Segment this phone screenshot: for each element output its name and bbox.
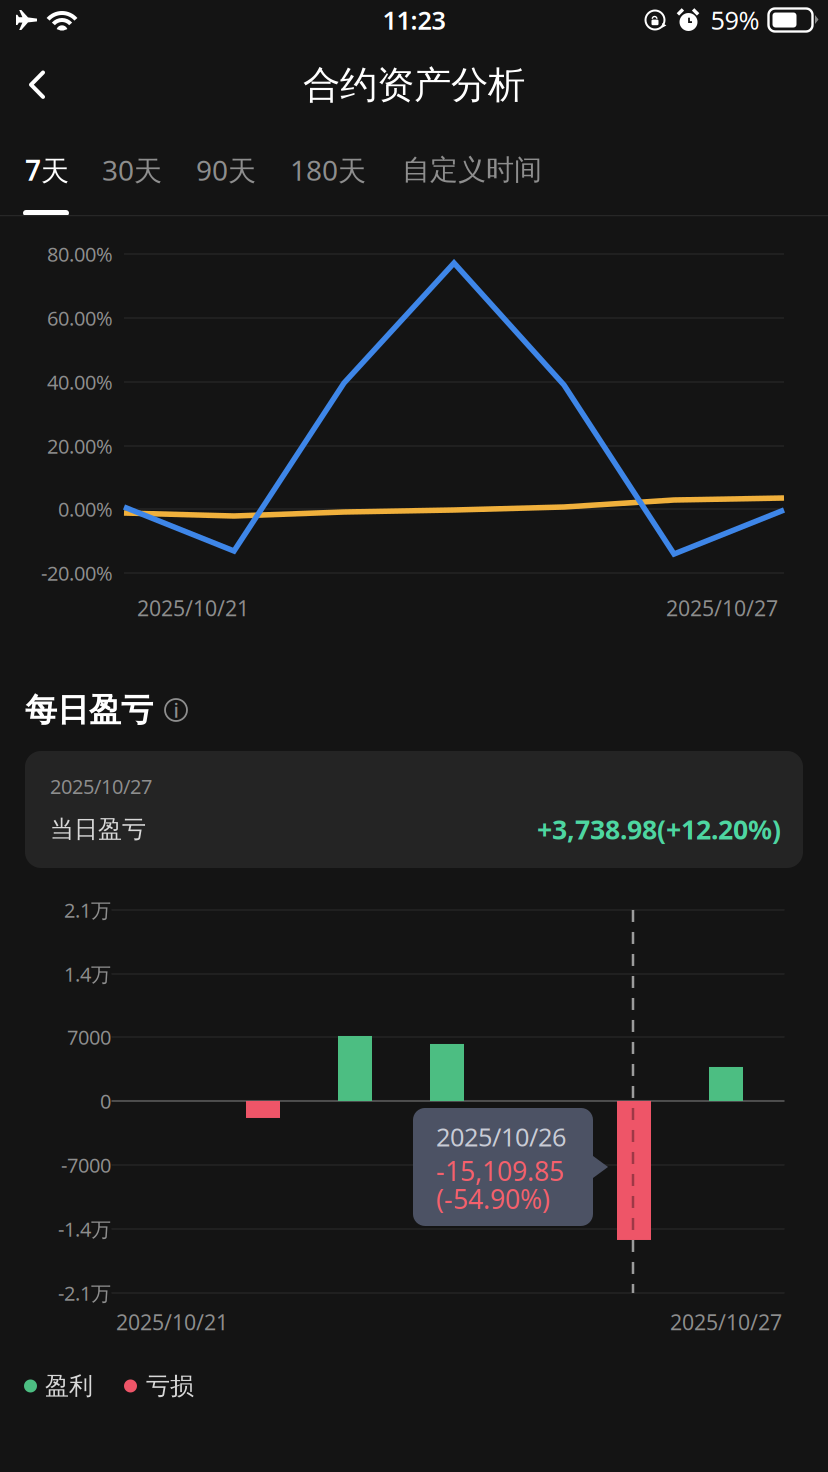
- staticText: 7000: [67, 1024, 111, 1050]
- staticText: 11:23: [382, 3, 445, 37]
- staticText: 180天: [290, 151, 366, 189]
- button[interactable]: 180天: [273, 124, 383, 216]
- staticText: -7000: [61, 1152, 111, 1178]
- staticText: 80.00%: [47, 241, 113, 267]
- staticText: 59%: [710, 3, 759, 37]
- staticText: 0.00%: [58, 496, 113, 522]
- staticText: i: [173, 697, 178, 723]
- staticText: 20.00%: [47, 433, 113, 459]
- staticText: 2025/10/21: [116, 1308, 228, 1336]
- button[interactable]: 自定义时间: [383, 124, 561, 216]
- staticText: 7天: [25, 151, 69, 189]
- staticText: 2025/10/26: [436, 1120, 566, 1154]
- staticText: 2025/10/27: [670, 1308, 782, 1336]
- staticText: -1.4万: [58, 1216, 111, 1242]
- staticText: 40.00%: [47, 369, 113, 395]
- button[interactable]: 7天: [9, 124, 85, 216]
- button[interactable]: Back: [0, 48, 75, 121]
- staticText: 当日盈亏: [50, 814, 146, 844]
- staticText: 90天: [196, 151, 256, 189]
- staticText: 盈利: [45, 1371, 93, 1401]
- staticText: (-54.90%): [436, 1181, 550, 1216]
- staticText: +3,738.98(+12.20%): [537, 812, 781, 847]
- staticText: 2025/10/27: [50, 773, 152, 800]
- staticText: -15,109.85: [436, 1153, 564, 1188]
- staticText: 2025/10/27: [666, 594, 778, 622]
- staticText: 0: [100, 1088, 111, 1114]
- staticText: -20.00%: [41, 560, 113, 586]
- staticText: 60.00%: [47, 305, 113, 331]
- staticText: 1.4万: [64, 961, 111, 987]
- staticText: 30天: [102, 151, 162, 189]
- button[interactable]: 30天: [85, 124, 179, 216]
- staticText: 亏损: [146, 1371, 194, 1401]
- staticText: 自定义时间: [402, 153, 542, 187]
- staticText: 2025/10/21: [137, 594, 249, 622]
- button[interactable]: About daily profit and loss: [164, 698, 188, 722]
- staticText: -2.1万: [58, 1280, 111, 1306]
- staticText: 2.1万: [64, 897, 111, 923]
- button[interactable]: 90天: [179, 124, 273, 216]
- staticText: 合约资产分析: [303, 62, 525, 108]
- staticText: 每日盈亏: [25, 690, 153, 730]
